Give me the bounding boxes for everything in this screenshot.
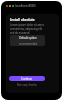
staticText: Continue	[21, 77, 33, 81]
staticText: Lorem ipsum dolor sit amet consectetur, …	[10, 23, 45, 35]
staticText: localhost:8080	[15, 4, 36, 8]
staticText: Default option	[19, 36, 37, 40]
button[interactable]: Continue	[9, 76, 45, 81]
staticText: Install absolute	[10, 18, 35, 22]
staticText: Not now, thanks	[17, 83, 37, 87]
button[interactable]: Default option	[10, 35, 45, 46]
staticText: recommended	[19, 42, 37, 46]
